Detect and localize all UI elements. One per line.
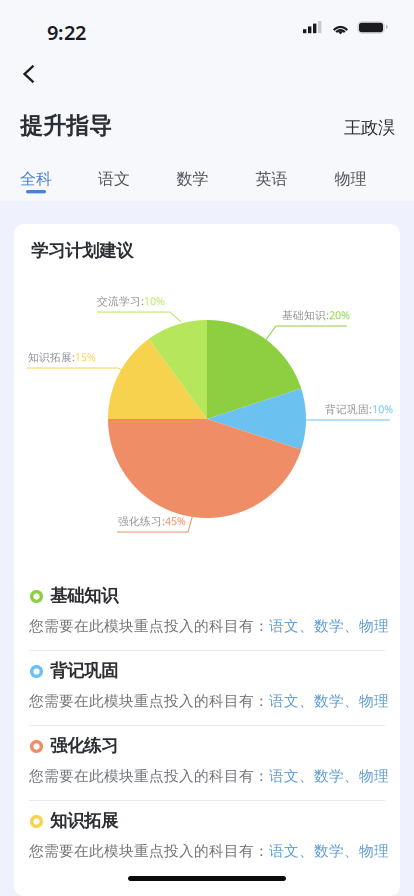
staticText: 45% [165,514,186,528]
button[interactable]: 王政淏 [344,117,395,138]
staticText: 知识拓展 [50,810,118,831]
button[interactable]: 数学 [161,165,223,205]
staticText: 数学 [176,169,208,189]
staticText: 物理 [334,169,366,189]
staticText: 提升指导 [20,112,112,140]
staticText: 您需要在此模块重点投入的科目有： [29,692,269,710]
button[interactable]: 物理 [319,165,381,205]
staticText: 9:22 [47,19,86,46]
button[interactable]: 基础知识 [14,576,400,650]
staticText: 知识拓展: [28,350,75,364]
staticText: 英语 [255,169,287,189]
staticText: 全科 [20,169,52,189]
staticText: 语文 [98,169,130,189]
staticText: 您需要在此模块重点投入的科目有： [29,617,269,635]
staticText: 背记巩固 [50,660,118,681]
staticText: 10% [144,294,165,308]
staticText: 基础知识 [50,585,118,606]
button[interactable]: 英语 [240,165,302,205]
staticText: 10% [372,402,393,416]
button[interactable]: 全科 [5,165,67,205]
button[interactable]: 强化练习 [14,726,400,800]
button[interactable]: 知识拓展 [14,801,400,875]
staticText: 学习计划建议 [31,240,133,261]
staticText: 强化练习 [50,735,118,756]
staticText: 20% [329,308,350,322]
staticText: 15% [75,350,96,364]
staticText: 基础知识: [282,308,329,322]
button[interactable]: 背记巩固 [14,651,400,725]
staticText: 交流学习: [97,294,144,308]
button[interactable]: 语文 [83,165,145,205]
staticText: 语文、数学、物理 [269,617,389,635]
staticText: 语文、数学、物理 [269,692,389,710]
staticText: 强化练习: [118,514,165,528]
staticText: 语文、数学、物理 [269,767,389,785]
staticText: 语文、数学、物理 [269,842,389,860]
staticText: 王政淏 [344,117,395,138]
staticText: 您需要在此模块重点投入的科目有： [29,767,269,785]
button[interactable]: Back [6,54,52,94]
staticText: 背记巩固: [325,402,372,416]
staticText: 您需要在此模块重点投入的科目有： [29,842,269,860]
